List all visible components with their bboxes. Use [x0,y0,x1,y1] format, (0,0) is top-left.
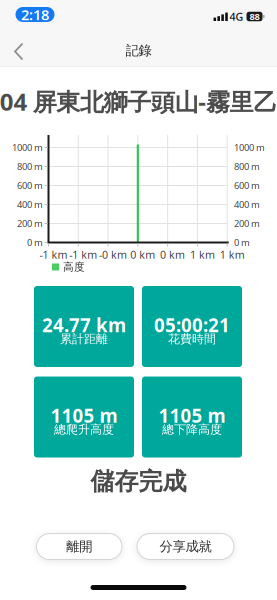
button[interactable]: 離開 [36,533,122,559]
staticText: 200 m [234,217,260,230]
staticText: 400 m [234,198,260,211]
staticText: -1 km [39,247,67,262]
staticText: 200 m [17,217,43,230]
staticText: 600 m [17,179,43,192]
staticText: 花費時間 [168,332,216,346]
staticText: 總爬升高度 [54,422,114,437]
staticText: 離開 [66,538,92,555]
staticText: 2:18 [21,5,49,24]
staticText: 400 m [17,198,43,211]
button[interactable]: 分享成就 [137,533,234,559]
staticText: 高度 [63,260,85,273]
staticText: 24.77 km [42,313,126,337]
staticText: 1000 m [12,141,43,154]
staticText: 600 m [234,179,260,192]
staticText: 1105 m [50,403,117,428]
staticText: 1000 m [234,141,265,154]
staticText: 800 m [234,160,260,173]
staticText: 分享成就 [159,538,211,555]
staticText: 0 m [234,236,250,249]
staticText: 累計距離 [60,332,108,346]
staticText: 800 m [17,160,43,173]
staticText: 0 km [160,247,185,262]
button[interactable] [0,30,36,66]
staticText: 0 km [130,247,155,262]
staticText: 05:00:21 [154,313,230,337]
staticText: 記錄 [125,42,151,59]
staticText: -1 km [69,247,97,262]
staticText: 0 m [27,236,43,249]
staticText: 4G [229,9,243,24]
staticText: 1 km [190,247,215,262]
staticText: 總下降高度 [162,422,222,437]
staticText: 1 km [220,247,245,262]
staticText: 88 [249,10,259,23]
staticText: -0 km [99,247,127,262]
staticText: 1105 m [158,403,225,428]
staticText: 儲存完成 [90,467,186,496]
staticText: 04 屏東北獅子頭山-霧里乙 [0,86,277,117]
